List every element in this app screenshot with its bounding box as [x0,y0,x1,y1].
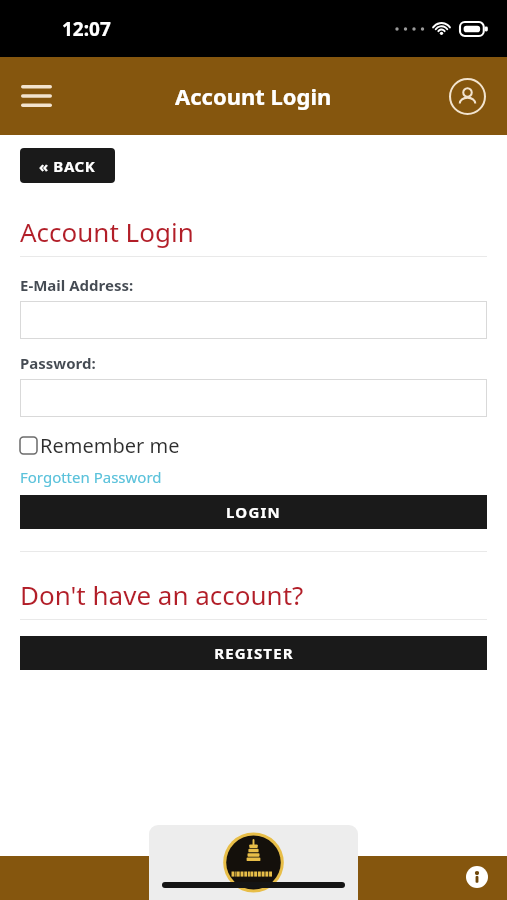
staticText: Account Login [20,214,194,249]
button[interactable]: Forgotten Password [20,467,162,487]
staticText: « BACK [39,156,96,176]
staticText: LOGIN [226,502,281,522]
staticText: 12:07 [62,16,111,42]
button[interactable]: Account [447,76,487,116]
staticText: E-Mail Address: [20,275,134,295]
button[interactable]: « BACK [20,148,115,183]
button[interactable] [20,379,487,417]
staticText: Remember me [40,432,180,459]
button[interactable]: Information [465,865,489,889]
staticText: REGISTER [214,643,294,663]
button[interactable] [20,301,487,339]
button[interactable]: Kings Kebabs home [149,825,358,900]
button[interactable]: LOGIN [20,495,487,529]
staticText: Password: [20,353,96,373]
staticText: Forgotten Password [20,467,162,487]
button[interactable]: Open navigation menu [14,74,58,118]
staticText: Account Login [175,81,332,111]
staticText: Don't have an account? [20,577,304,612]
button[interactable]: REGISTER [20,636,487,670]
button[interactable]: Remember me [20,432,180,459]
